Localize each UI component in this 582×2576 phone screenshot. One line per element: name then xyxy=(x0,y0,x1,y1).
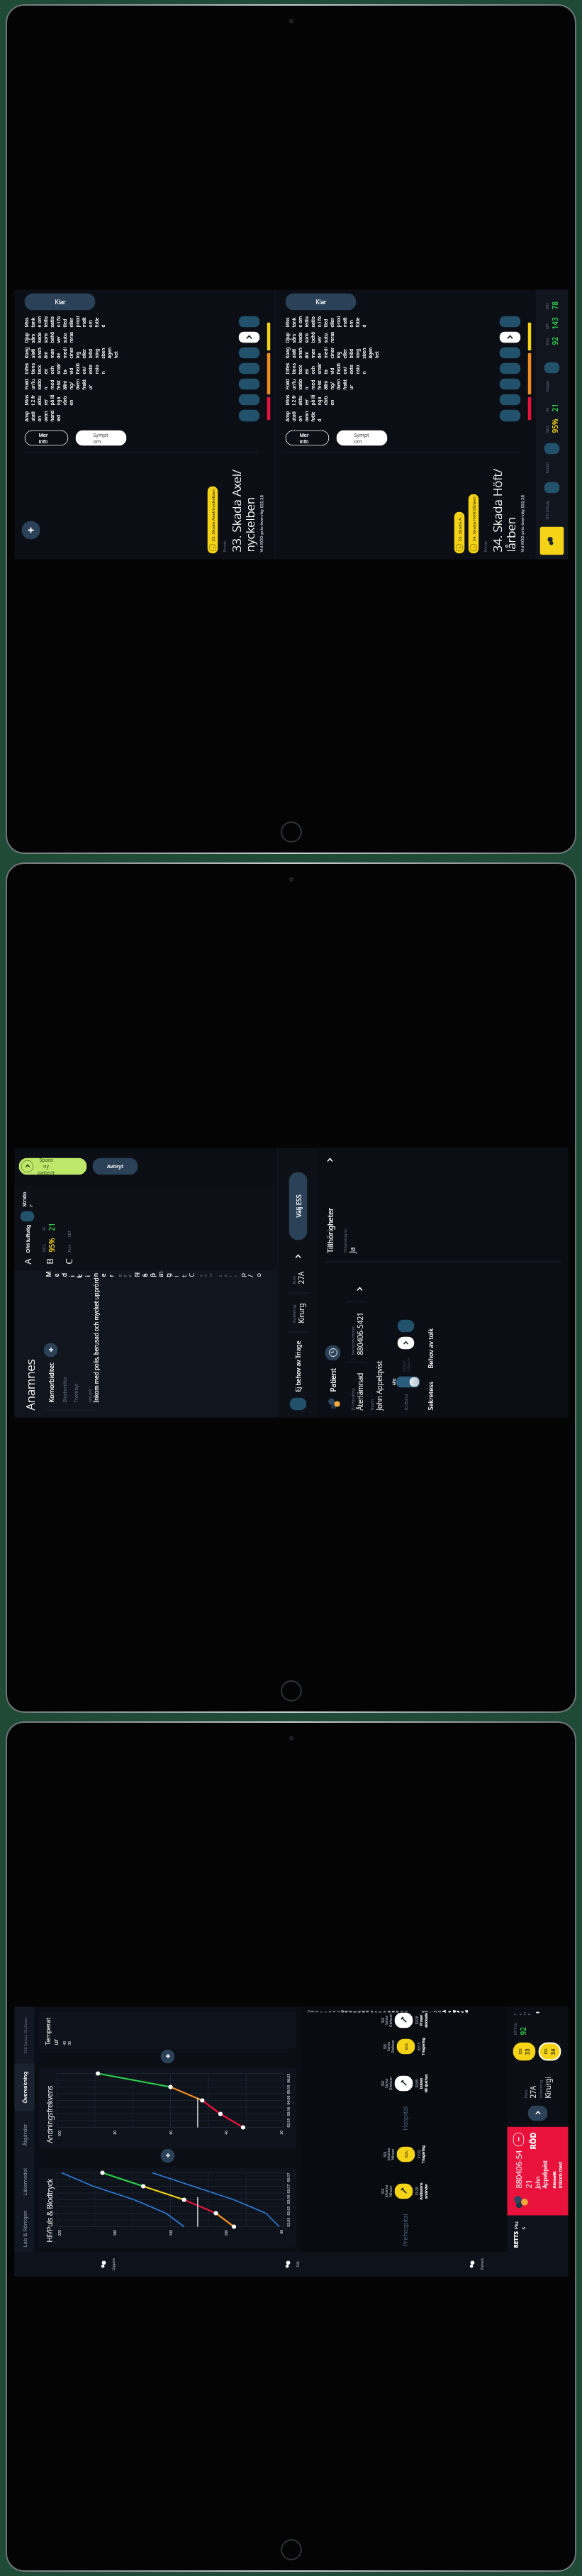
button[interactable]: × xyxy=(468,494,479,554)
button[interactable]: Lägg till mätvärde xyxy=(161,2149,175,2163)
staticText: 880406-5421 xyxy=(513,2149,533,2188)
staticText: Djup sårskada som behöver sutureras xyxy=(23,332,237,343)
button[interactable]: Klar xyxy=(24,293,95,310)
button[interactable]: ID-band växel xyxy=(396,1376,420,1388)
staticText: 27A xyxy=(528,2086,538,2098)
button[interactable] xyxy=(544,362,560,373)
staticText: SpO₂ xyxy=(41,1244,46,1252)
staticText: 21 xyxy=(46,1222,56,1231)
button[interactable]: × xyxy=(454,512,465,554)
button[interactable] xyxy=(397,1337,414,1349)
button[interactable]: × xyxy=(207,486,218,554)
button[interactable]: Övervakning xyxy=(15,2064,34,2111)
staticText: × xyxy=(457,546,463,549)
button[interactable]: Nästa xyxy=(499,332,521,343)
staticText: HF/Puls xyxy=(513,2022,518,2035)
button[interactable]: Triagering xyxy=(397,2147,415,2162)
button[interactable]: Välj Misstanke om ledluxation i fotled e… xyxy=(499,316,521,327)
button[interactable]: Välj Fraktur/luxation med felställning/ … xyxy=(239,378,260,390)
staticText: Mer info xyxy=(300,432,315,444)
button[interactable]: Mer info xyxy=(24,430,68,446)
staticText: 02:05 xyxy=(414,2065,419,2102)
staticText: Övervakning xyxy=(21,2071,28,2103)
button[interactable]: Lab & Röntgen xyxy=(15,2205,34,2252)
staticText: Vid RÖD prio överväg xyxy=(519,508,525,552)
staticText: Inkom med polis, berusad och mycket uppr… xyxy=(92,1278,100,1403)
staticText: SSK Sanna Olofsson xyxy=(22,2017,27,2054)
button[interactable]: ESS xyxy=(538,2042,561,2061)
staticText: 03:16 xyxy=(286,2107,291,2116)
button[interactable]: Nästa xyxy=(239,332,260,343)
button[interactable]: Välj Infektionstecken och smärta vid fle… xyxy=(239,363,260,374)
button[interactable]: Klar xyxy=(285,293,356,310)
button[interactable]: Välj Amputation ovan fotled xyxy=(499,410,521,422)
button[interactable]: Mer info xyxy=(285,430,329,446)
staticText: Anamnes xyxy=(22,1359,38,1410)
button[interactable]: Ambulans anländer xyxy=(394,2183,413,2199)
button[interactable]: Prover skickade xyxy=(394,2012,413,2028)
staticText: Temperatur xyxy=(43,2015,59,2045)
button[interactable] xyxy=(540,527,564,555)
button[interactable]: Inkom till sjukhus xyxy=(394,2076,413,2091)
staticText: 35 xyxy=(67,2041,72,2045)
button[interactable] xyxy=(397,1320,414,1332)
button[interactable]: Liggare xyxy=(15,2252,200,2276)
button[interactable] xyxy=(290,1398,307,1410)
button[interactable]: Mer xyxy=(513,2132,524,2147)
button[interactable]: Symptom xyxy=(75,430,127,446)
staticText: Puls xyxy=(545,338,550,345)
staticText: Misstanke om ledluxation i fotled eller … xyxy=(23,316,237,327)
staticText: SSK Sanna Olofsson xyxy=(382,2028,395,2065)
button[interactable]: Åtgärder xyxy=(15,2111,34,2159)
staticText: RETTS xyxy=(511,2230,519,2248)
staticText: 180 xyxy=(112,2230,117,2236)
button[interactable] xyxy=(20,1211,34,1222)
staticText: GUL xyxy=(404,2042,409,2050)
staticText: 02:35 xyxy=(286,2118,291,2127)
button[interactable]: Välj Minst 2 frakturer på långa rörben xyxy=(239,394,260,405)
button[interactable]: Välj Amputation ovan handled xyxy=(239,410,260,422)
staticText: Lab & Röntgen xyxy=(21,2210,28,2247)
button[interactable]: Lägg till temperatur xyxy=(161,2049,175,2064)
staticText: Ja xyxy=(347,1247,357,1253)
staticText: Infektionstecken och smärta vid flextion… xyxy=(23,363,237,374)
button[interactable]: Välj Minst 2 frakturer på långa rörben xyxy=(499,394,521,405)
button[interactable]: Välj Koagulationshämmande medicinering e… xyxy=(239,347,260,359)
staticText: ESS 38 xyxy=(519,495,525,508)
staticText: 03:17 xyxy=(286,2184,291,2193)
button[interactable]: Avbryt xyxy=(93,1158,138,1175)
staticText: Avbryt xyxy=(107,1162,123,1170)
button[interactable]: Historik xyxy=(325,1345,341,1361)
button[interactable]: Patient xyxy=(384,2252,568,2276)
staticText: Välj ESS xyxy=(294,1194,302,1217)
button[interactable]: Lägg till komorbiditet xyxy=(44,1343,58,1357)
staticText: 02:53 xyxy=(286,2206,291,2215)
staticText: Triagering xyxy=(421,2136,426,2173)
button[interactable]: Triagering xyxy=(397,2039,415,2054)
staticText: 02:20 xyxy=(414,2012,419,2028)
staticText: Kirurgi xyxy=(543,2076,553,2098)
button[interactable]: Symptom xyxy=(336,430,387,446)
button[interactable]: Välj Infektionstecken och smärta vid fle… xyxy=(499,363,521,374)
staticText: Prover skickade xyxy=(419,2012,428,2028)
button[interactable]: Välj ESS xyxy=(289,1172,307,1240)
button[interactable]: Visa patient xyxy=(528,2105,548,2121)
button[interactable]: Lägg till xyxy=(22,521,40,539)
button[interactable]: Läkemedel xyxy=(15,2159,34,2205)
button[interactable]: ESS xyxy=(513,2042,536,2061)
staticText: 92 xyxy=(518,2027,528,2035)
button[interactable]: Välj Koagulationshämmande medicinering e… xyxy=(499,347,521,359)
staticText: ESS xyxy=(518,2048,523,2054)
button[interactable]: Sök xyxy=(200,2252,384,2276)
button[interactable] xyxy=(544,443,560,454)
button[interactable]: Spara ny patient xyxy=(19,1158,87,1175)
staticText: Andningsfrekvens xyxy=(44,2085,54,2143)
staticText: 34 xyxy=(548,2048,556,2055)
button[interactable]: Välj Fraktur/luxation med felställning/ … xyxy=(499,378,521,390)
staticText: Plus xyxy=(511,2220,526,2230)
staticText: Plats xyxy=(523,2089,528,2098)
button[interactable] xyxy=(544,482,560,493)
button[interactable]: Välj Misstanke om ledluxation i fotled e… xyxy=(239,316,260,327)
staticText: GUL xyxy=(404,2150,409,2158)
staticText: HF/Puls & Blodtryck xyxy=(44,2178,54,2242)
